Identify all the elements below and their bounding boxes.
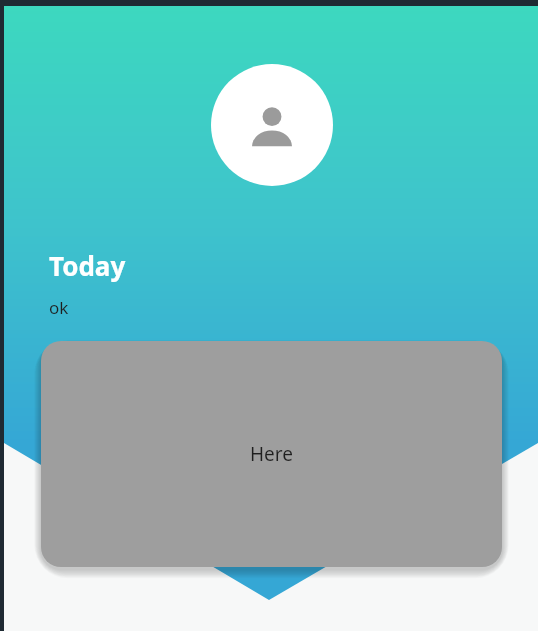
staticText: Here	[250, 441, 293, 467]
button[interactable]: Profile photo	[211, 64, 333, 186]
button[interactable]: Here	[41, 341, 502, 567]
staticText: ok	[49, 296, 69, 319]
staticText: Today	[49, 248, 126, 283]
